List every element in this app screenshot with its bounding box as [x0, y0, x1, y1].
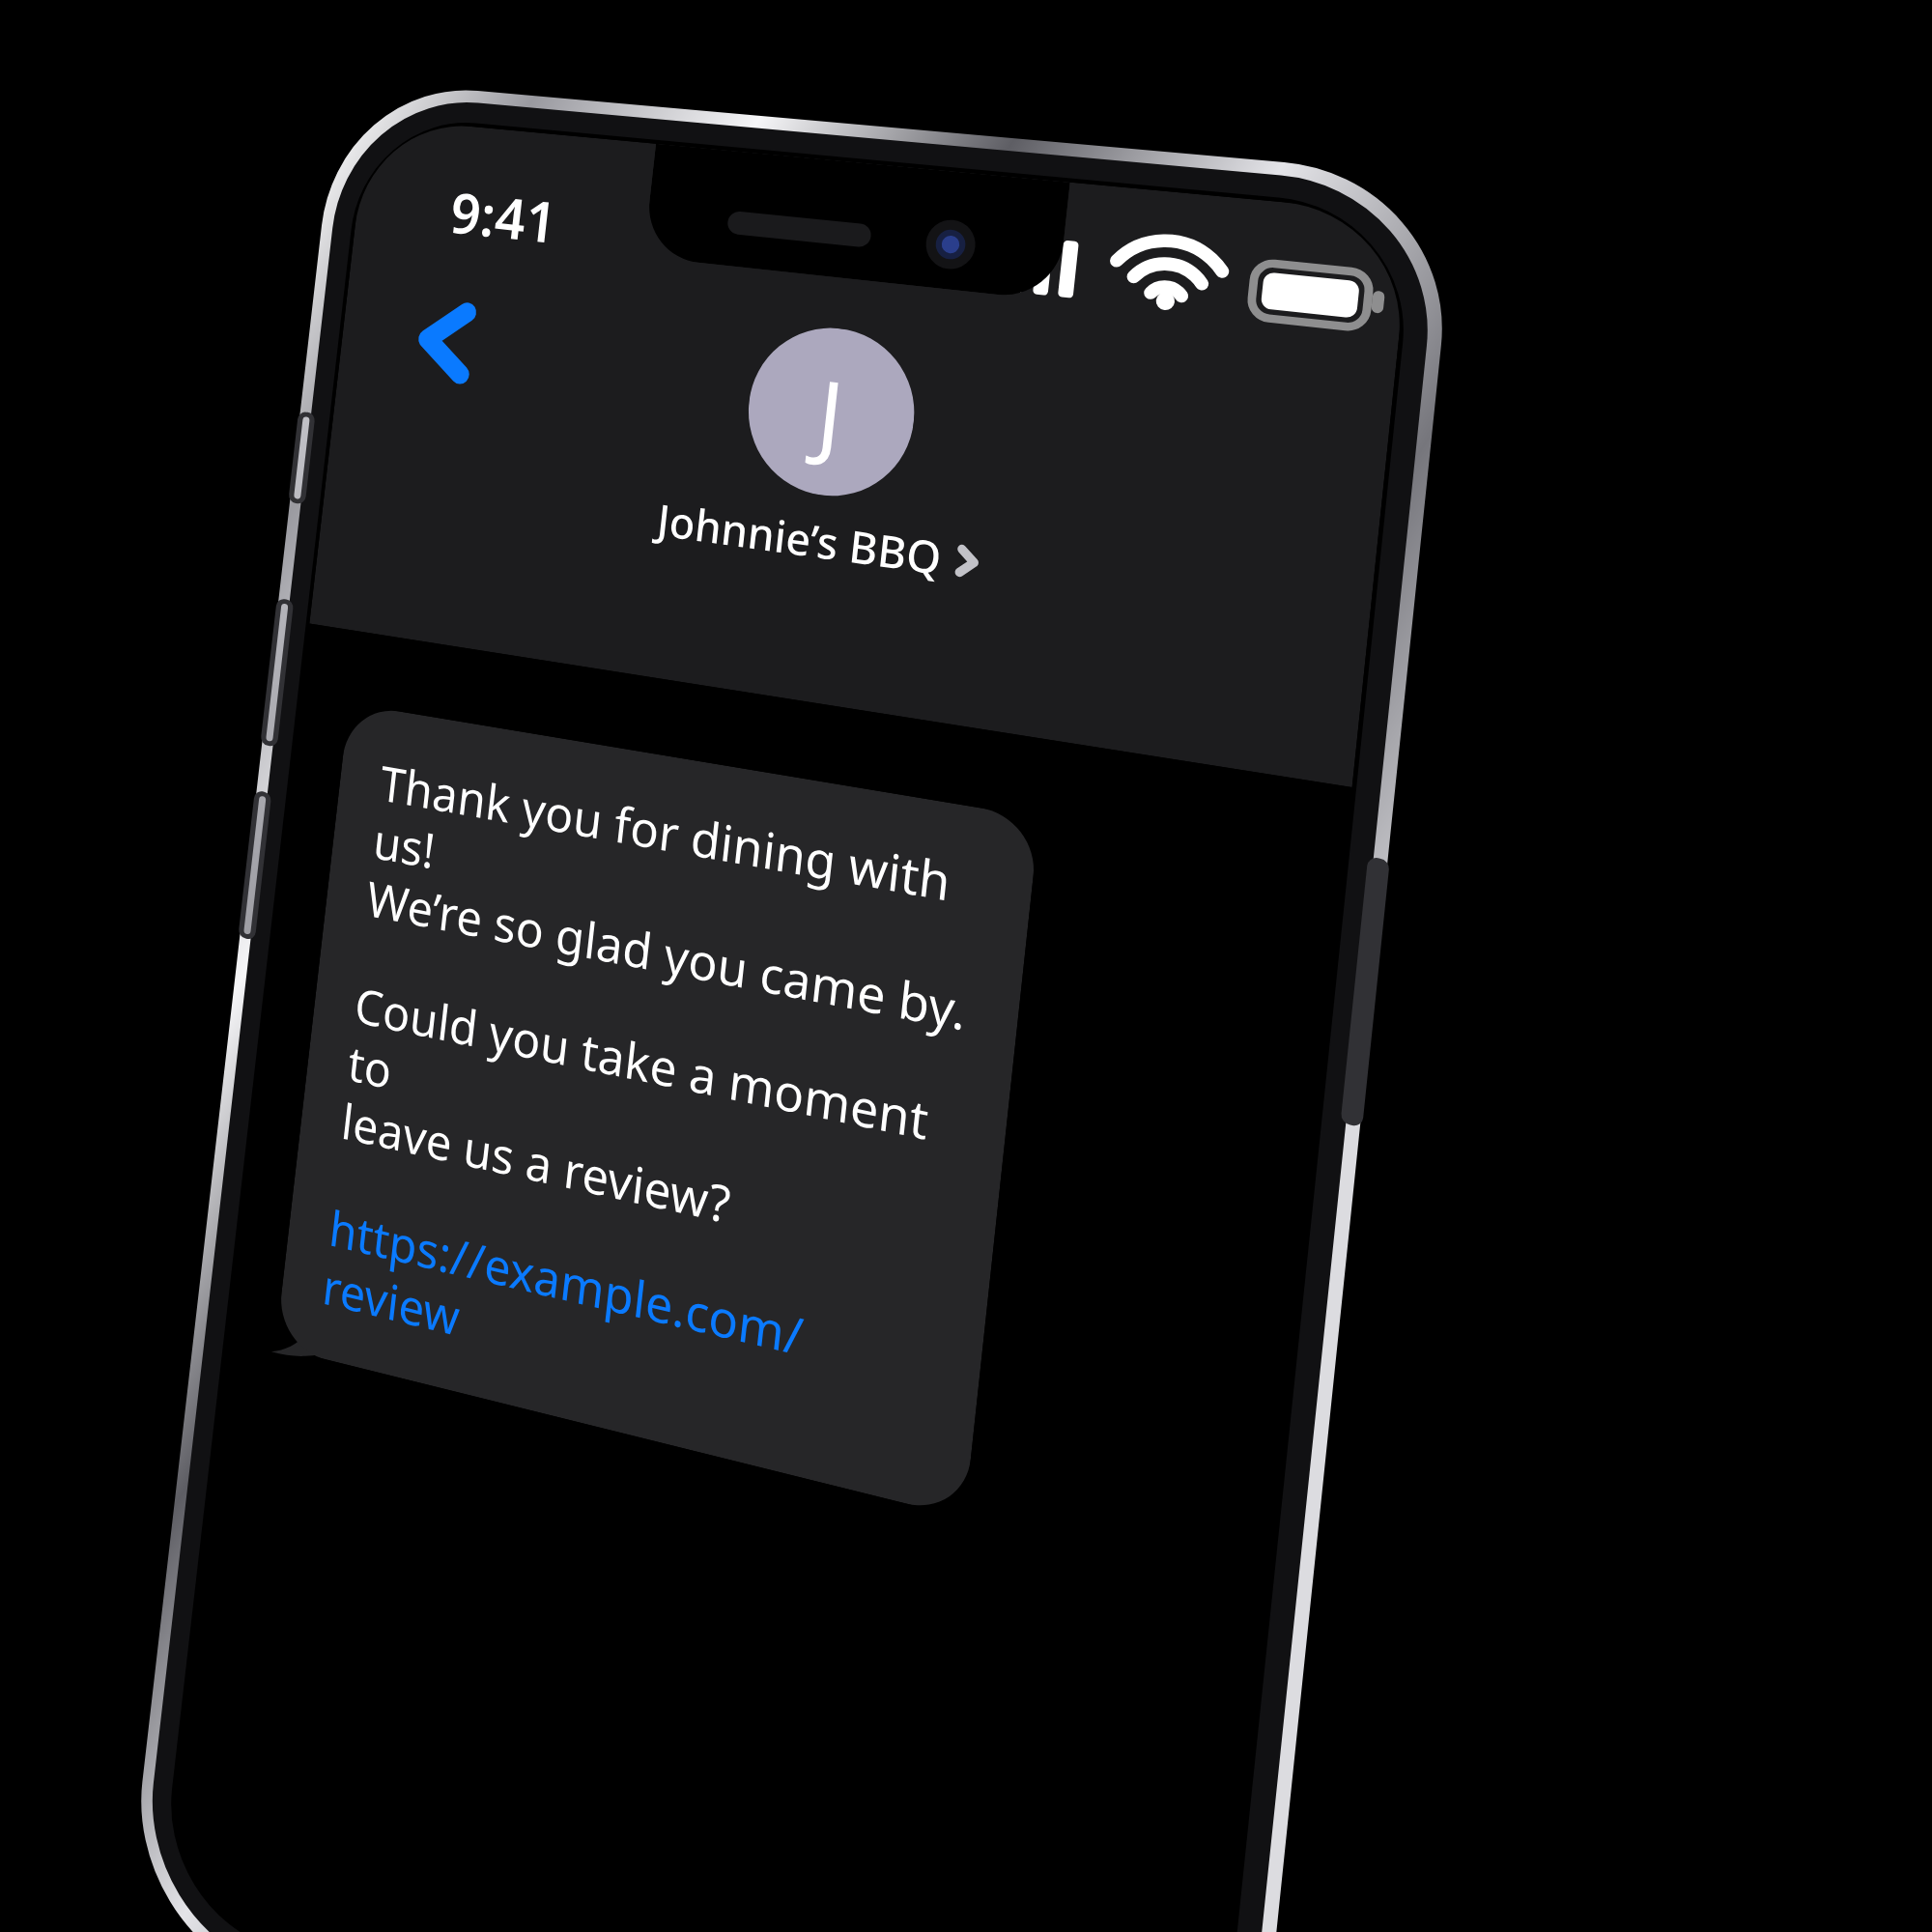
staticText: Johnnie’s BBQ — [655, 489, 945, 588]
button[interactable]: J — [655, 311, 1005, 593]
staticText: Thank you for dining with us! We’re so g… — [364, 749, 989, 1047]
button[interactable]: Back — [384, 275, 511, 409]
staticText: 9:41 — [447, 173, 561, 260]
staticText: Could you take a moment to leave us a re… — [338, 971, 963, 1286]
button[interactable]: Thank you for dining with us! We’re so g… — [275, 703, 1040, 1518]
button[interactable]: https://example.com/review — [319, 1193, 937, 1464]
staticText: J — [811, 347, 851, 478]
